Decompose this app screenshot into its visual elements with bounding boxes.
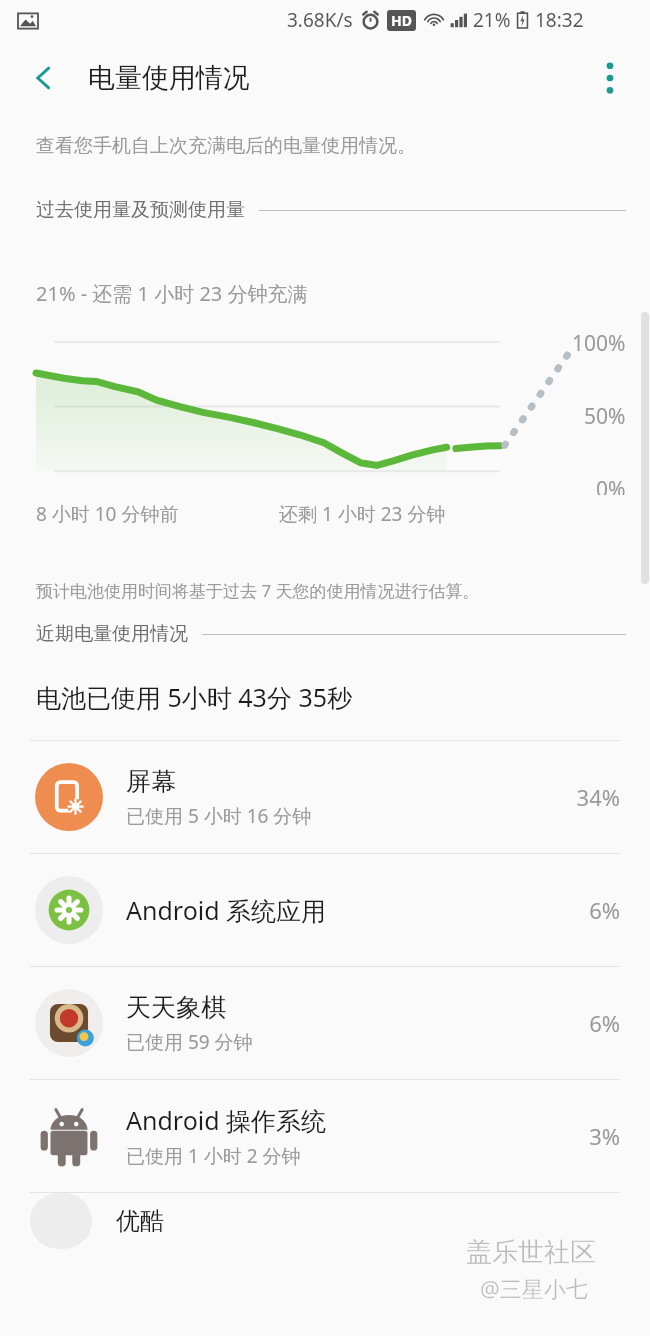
staticText: @三星小七 bbox=[480, 1273, 588, 1303]
staticText: 已使用 59 分钟 bbox=[126, 1029, 253, 1055]
staticText: 过去使用量及预测使用量 bbox=[36, 198, 245, 222]
staticText: Android 系统应用 bbox=[126, 893, 327, 927]
staticText: 电池已使用 5小时 43分 35秒 bbox=[36, 680, 353, 714]
staticText: 已使用 1 小时 2 分钟 bbox=[126, 1143, 301, 1169]
staticText: 预计电池使用时间将基于过去 7 天您的使用情况进行估算。 bbox=[36, 579, 480, 602]
staticText: 天天象棋 bbox=[126, 992, 226, 1023]
button[interactable]: Android 系统应用 bbox=[0, 854, 650, 966]
staticText: HD bbox=[391, 11, 412, 30]
staticText: 盖乐世社区 bbox=[466, 1236, 596, 1269]
staticText: 21% bbox=[473, 7, 511, 33]
staticText: 18:32 bbox=[535, 7, 584, 33]
button[interactable]: 天天象棋 bbox=[0, 967, 650, 1079]
staticText: 优酷 bbox=[116, 1206, 164, 1236]
staticText: 21% - 还需 1 小时 23 分钟充满 bbox=[36, 280, 308, 307]
staticText: 近期电量使用情况 bbox=[36, 622, 188, 646]
staticText: 6% bbox=[589, 895, 620, 925]
staticText: 6% bbox=[589, 1008, 620, 1038]
staticText: 电量使用情况 bbox=[88, 61, 250, 95]
staticText: 3% bbox=[589, 1121, 620, 1151]
staticText: 还剩 1 小时 23 分钟 bbox=[279, 501, 446, 527]
staticText: 50% bbox=[584, 402, 626, 431]
staticText: 8 小时 10 分钟前 bbox=[36, 501, 179, 527]
button[interactable]: 屏幕 bbox=[0, 741, 650, 853]
staticText: Android 操作系统 bbox=[126, 1103, 327, 1137]
staticText: 查看您手机自上次充满电后的电量使用情况。 bbox=[36, 134, 416, 158]
staticText: 34% bbox=[576, 782, 620, 812]
button[interactable]: Android 操作系统 bbox=[0, 1080, 650, 1192]
button[interactable]: Back bbox=[16, 50, 72, 106]
staticText: 0% bbox=[596, 475, 626, 495]
button[interactable]: More options bbox=[582, 50, 638, 106]
button[interactable]: 优酷 bbox=[0, 1193, 650, 1249]
staticText: 100% bbox=[572, 329, 626, 358]
staticText: 3.68K/s bbox=[287, 7, 353, 33]
staticText: 屏幕 bbox=[126, 766, 176, 797]
staticText: 已使用 5 小时 16 分钟 bbox=[126, 803, 312, 829]
